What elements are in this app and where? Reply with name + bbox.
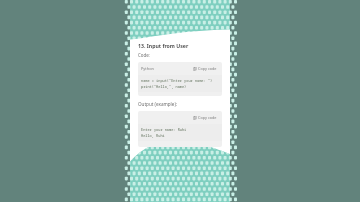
staticText: Hello, Ruhi <box>141 133 165 138</box>
button[interactable]: Copy code <box>191 65 219 72</box>
staticText: Enter your name: Ruhi <box>141 127 187 132</box>
button[interactable]: Copy code <box>138 111 222 147</box>
staticText: Python <box>141 66 154 71</box>
button[interactable]: Copy code <box>191 114 219 121</box>
staticText: Copy code <box>198 115 217 120</box>
staticText: print("Hello,", name) <box>141 84 187 89</box>
staticText: 13. Input from User <box>138 42 189 49</box>
staticText: Copy code <box>198 66 217 71</box>
staticText: Output (example): <box>138 101 177 107</box>
button[interactable]: Python <box>138 62 222 96</box>
other: Copy code <box>193 116 197 120</box>
other: Copy code <box>193 67 197 71</box>
staticText: name = input("Enter your name: ") <box>141 78 213 83</box>
staticText: Code: <box>138 52 150 58</box>
